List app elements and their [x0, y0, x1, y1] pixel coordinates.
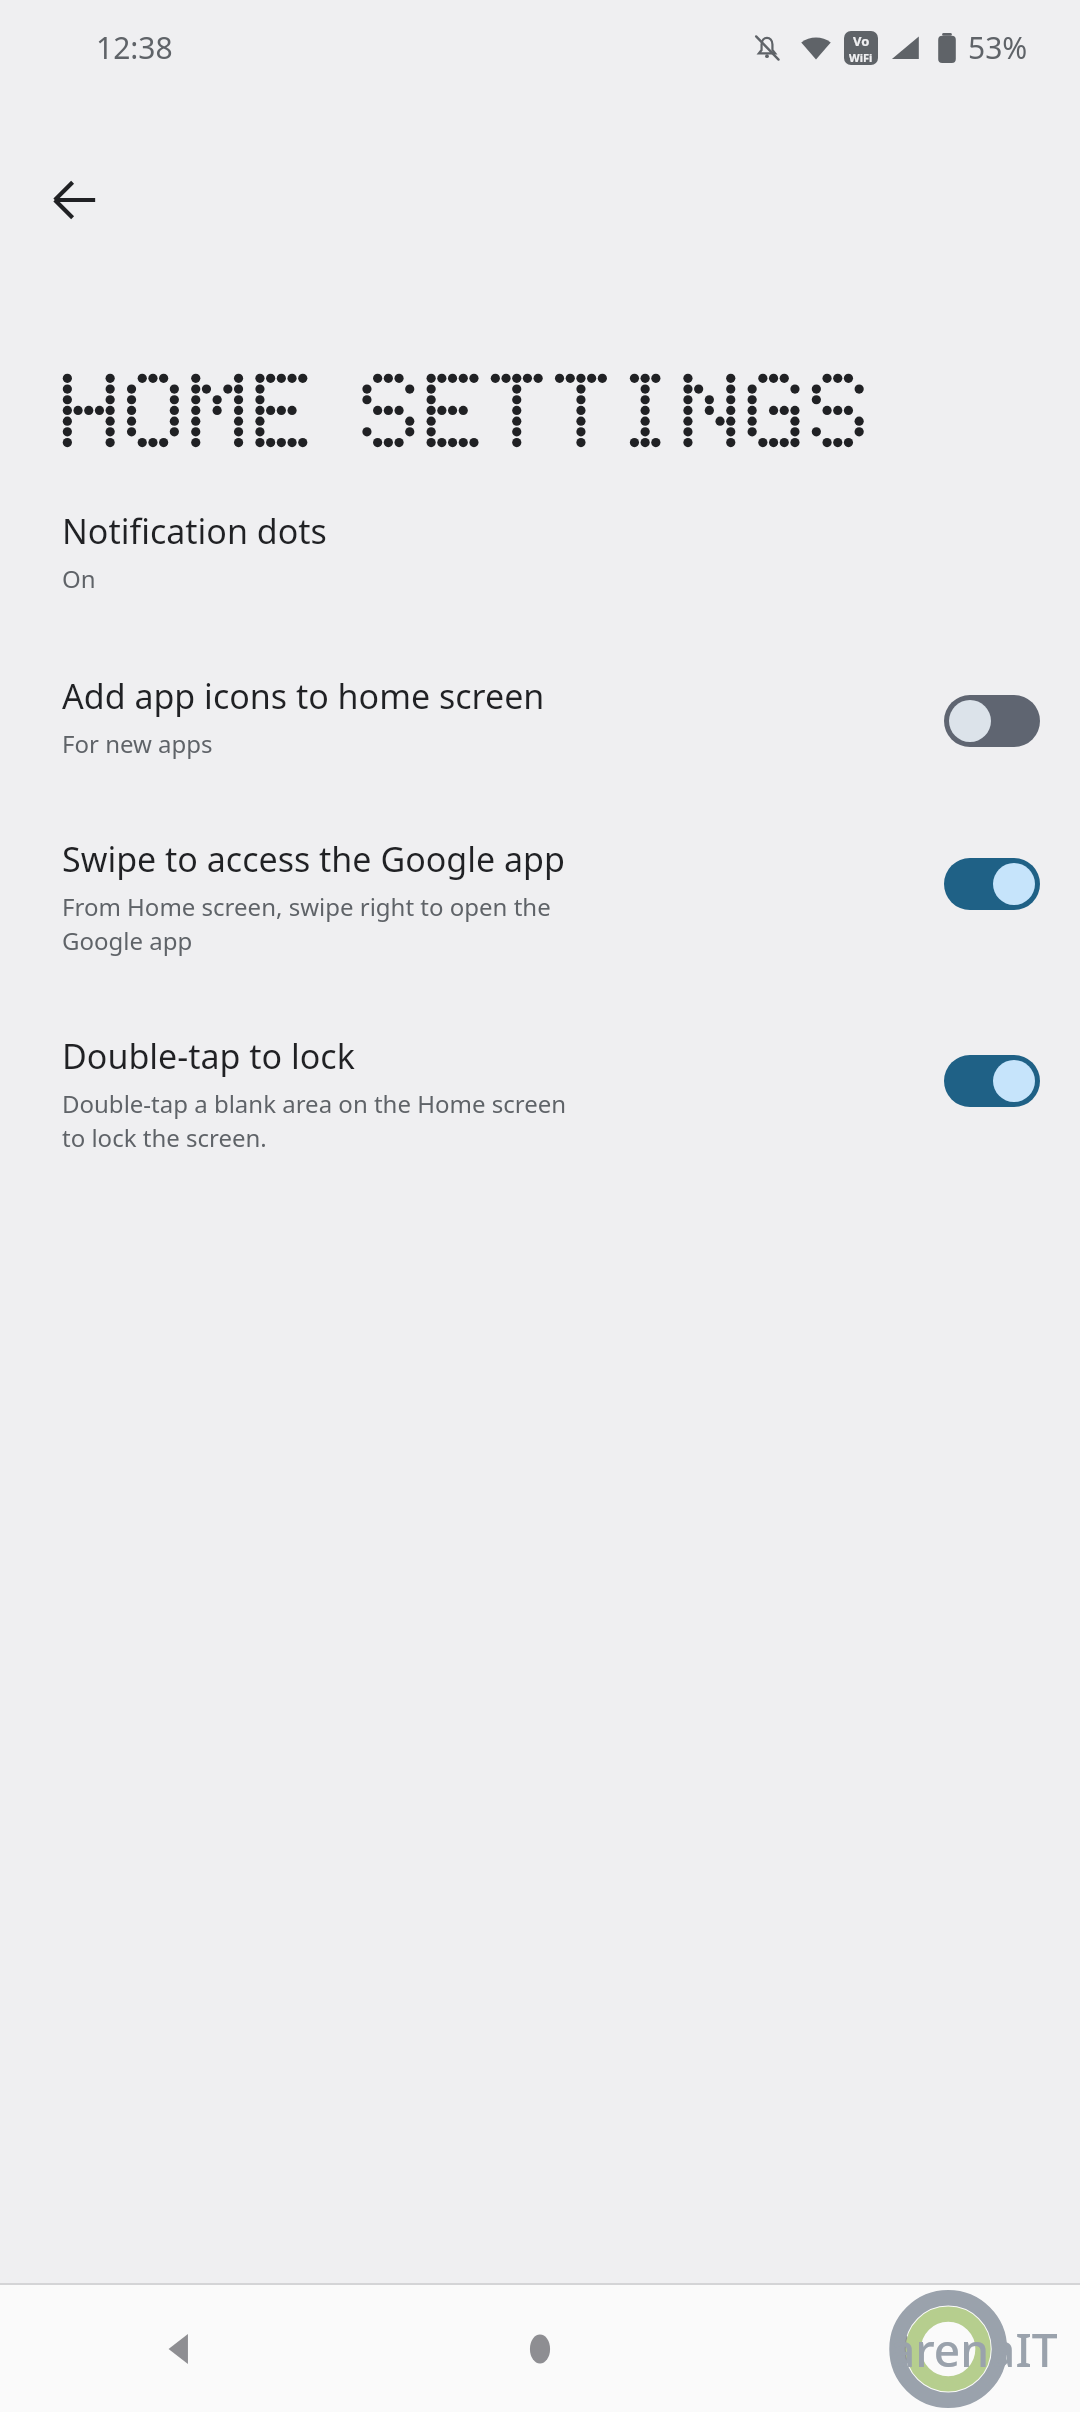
button[interactable]: Swipe to access the Google app	[0, 760, 1080, 957]
staticText: Add app icons to home screen	[62, 673, 545, 719]
staticText: Vo	[853, 32, 870, 50]
staticText: Double-tap a blank area on the Home scre…	[62, 1087, 567, 1154]
button[interactable]: Double-tap to lock	[0, 957, 1080, 1154]
staticText: 53%	[968, 27, 1028, 68]
button[interactable]: Add app icons to home screen	[0, 595, 1080, 760]
button[interactable]: Toggle on	[944, 858, 1040, 910]
button[interactable]: Toggle off	[944, 695, 1040, 747]
button[interactable]: Toggle on	[944, 1055, 1040, 1107]
staticText: Double-tap to lock	[62, 1033, 355, 1079]
button[interactable]: Recent apps	[720, 2285, 1080, 2412]
button[interactable]: Home	[360, 2285, 720, 2412]
staticText: From Home screen, swipe right to open th…	[62, 890, 551, 957]
button[interactable]: Back	[32, 157, 118, 243]
staticText: 12:38	[96, 27, 173, 68]
button[interactable]: Notification dots	[0, 508, 1080, 595]
button[interactable]: Back	[0, 2285, 360, 2412]
staticText: On	[62, 562, 96, 595]
staticText: WiFi	[849, 50, 873, 65]
staticText: Notification dots	[62, 508, 327, 554]
staticText: Swipe to access the Google app	[62, 836, 565, 882]
staticText: arenaIT	[889, 2318, 1058, 2381]
staticText: For new apps	[62, 727, 213, 760]
